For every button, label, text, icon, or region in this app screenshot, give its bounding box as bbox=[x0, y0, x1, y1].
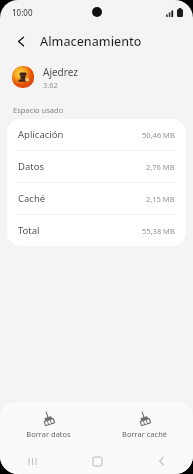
staticText: Borrar caché bbox=[122, 429, 167, 439]
staticText: 2,76 MB bbox=[146, 162, 175, 172]
staticText: Datos bbox=[18, 160, 44, 173]
button[interactable]: Borrar caché bbox=[96, 406, 193, 444]
staticText: 10:00 bbox=[12, 7, 33, 18]
button[interactable]: Total bbox=[7, 215, 186, 246]
staticText: Borrar datos bbox=[26, 429, 71, 439]
staticText: 3.62 bbox=[43, 80, 58, 90]
staticText: Ajedrez bbox=[43, 65, 78, 79]
button[interactable]: Back bbox=[129, 448, 193, 474]
staticText: 2,15 MB bbox=[146, 194, 175, 204]
staticText: Total bbox=[18, 224, 40, 237]
staticText: 55,38 MB bbox=[142, 226, 175, 236]
button[interactable]: Borrar datos bbox=[0, 406, 96, 444]
button[interactable]: Back bbox=[11, 31, 31, 51]
button[interactable]: Home bbox=[65, 448, 129, 474]
button[interactable]: Aplicación bbox=[7, 119, 186, 150]
staticText: Espacio usado bbox=[13, 105, 64, 115]
staticText: Aplicación bbox=[18, 128, 64, 141]
staticText: Almacenamiento bbox=[40, 33, 142, 50]
button[interactable]: Datos bbox=[7, 151, 186, 182]
staticText: 50,46 MB bbox=[142, 130, 175, 140]
staticText: Caché bbox=[18, 192, 46, 205]
button[interactable]: Ajedrez bbox=[0, 58, 193, 96]
button[interactable]: Recents bbox=[0, 448, 65, 474]
button[interactable]: Caché bbox=[7, 183, 186, 214]
